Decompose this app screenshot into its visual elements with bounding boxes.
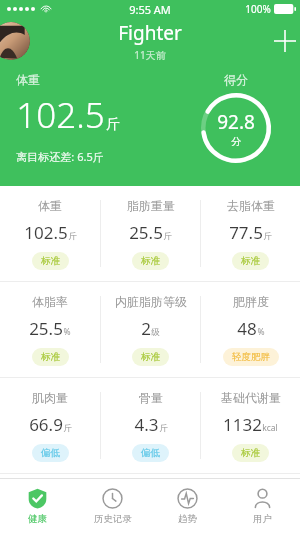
staticText: 48 — [237, 317, 257, 340]
staticText: 102.5 — [16, 91, 105, 139]
staticText: 骨量 — [139, 390, 163, 405]
staticText: 去脂体重 — [227, 198, 275, 213]
staticText: 标准 — [141, 351, 160, 363]
staticText: 标准 — [141, 255, 160, 267]
staticText: 25.5 — [129, 221, 163, 244]
staticText: 趋势 — [178, 513, 197, 525]
staticText: 斤 — [159, 423, 168, 434]
button[interactable]: 体重 — [0, 186, 100, 281]
staticText: 轻度肥胖 — [232, 351, 270, 363]
staticText: 4.3 — [134, 413, 159, 436]
staticText: 体重 — [38, 198, 62, 213]
staticText: 体重 — [16, 72, 40, 87]
button[interactable]: Profile avatar — [0, 22, 30, 60]
button[interactable]: 健康 — [0, 479, 75, 533]
staticText: kcal — [262, 422, 278, 434]
button[interactable]: 肌肉量 — [0, 378, 100, 473]
staticText: 肥胖度 — [233, 294, 269, 309]
staticText: 斤 — [263, 231, 272, 242]
staticText: 标准 — [41, 255, 60, 267]
button[interactable]: 体脂率 — [0, 282, 100, 377]
button[interactable]: 肥胖度 — [201, 282, 300, 377]
button[interactable]: 内脏脂肪等级 — [101, 282, 200, 377]
staticText: % — [63, 326, 71, 338]
staticText: 内脏脂肪等级 — [115, 294, 187, 309]
staticText: 偏低 — [141, 447, 160, 459]
staticText: 脂肪重量 — [127, 198, 175, 213]
staticText: 2 — [141, 317, 151, 340]
staticText: 斤 — [63, 423, 72, 434]
staticText: 11天前 — [134, 48, 166, 62]
button[interactable]: 用户 — [225, 479, 300, 533]
staticText: 标准 — [41, 351, 60, 363]
staticText: 斤 — [163, 231, 172, 242]
staticText: 离目标还差: 6.5斤 — [16, 149, 104, 164]
staticText: 健康 — [28, 513, 47, 525]
button[interactable]: 历史记录 — [75, 479, 150, 533]
staticText: 偏低 — [41, 447, 60, 459]
button[interactable]: 脂肪重量 — [101, 186, 200, 281]
staticText: 102.5 — [24, 221, 68, 244]
button[interactable]: 基础代谢量 — [201, 378, 300, 473]
staticText: 1132 — [223, 413, 262, 436]
staticText: 级 — [151, 327, 160, 338]
staticText: 92.8 — [217, 109, 255, 135]
staticText: 77.5 — [229, 221, 263, 244]
staticText: Fighter — [118, 20, 182, 46]
staticText: 体脂率 — [32, 294, 68, 309]
staticText: 标准 — [241, 447, 260, 459]
button[interactable]: 骨量 — [101, 378, 200, 473]
staticText: 用户 — [253, 513, 272, 525]
staticText: 得分 — [224, 72, 248, 87]
button[interactable]: 去脂体重 — [201, 186, 300, 281]
staticText: 标准 — [241, 255, 260, 267]
staticText: 基础代谢量 — [221, 390, 281, 405]
staticText: 斤 — [106, 116, 120, 134]
staticText: 25.5 — [29, 317, 63, 340]
staticText: % — [257, 326, 265, 338]
staticText: 肌肉量 — [32, 390, 68, 405]
staticText: 历史记录 — [94, 513, 132, 525]
staticText: 9:55 AM — [129, 2, 171, 17]
staticText: 分 — [231, 135, 241, 148]
staticText: 斤 — [68, 231, 77, 242]
button[interactable]: Add measurement — [264, 20, 300, 62]
staticText: 66.9 — [29, 413, 63, 436]
button[interactable]: 趋势 — [150, 479, 225, 533]
staticText: 100% — [245, 2, 271, 16]
